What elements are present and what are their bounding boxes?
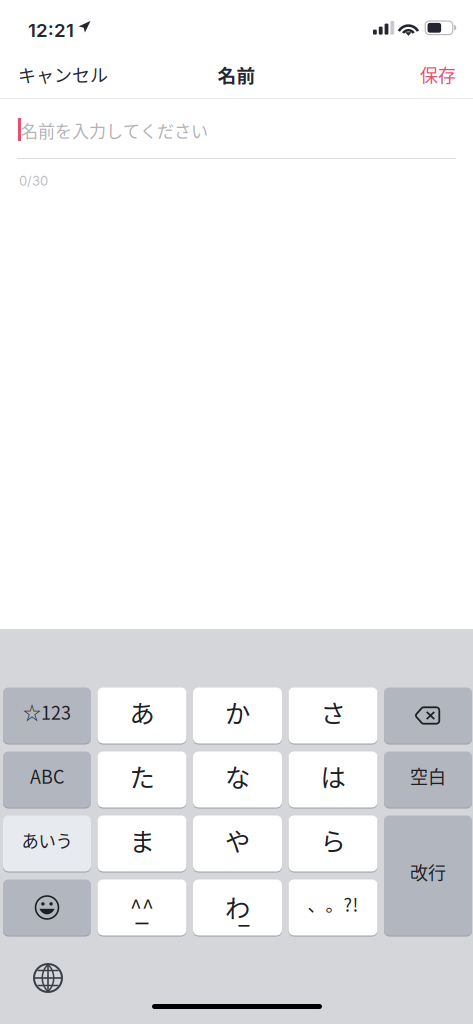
staticText: か — [225, 694, 250, 730]
button[interactable]: Emoji — [3, 879, 91, 936]
staticText: 、。?! — [307, 891, 358, 917]
button[interactable]: 、。?! — [288, 879, 377, 936]
staticText: さ — [320, 694, 345, 730]
button[interactable]: ABC — [3, 751, 91, 808]
button[interactable]: Kaomoji — [97, 879, 186, 936]
staticText: ま — [129, 822, 154, 858]
button[interactable]: た — [97, 751, 186, 808]
button[interactable]: ら — [288, 815, 377, 872]
staticText: キャンセル — [18, 61, 108, 88]
button[interactable]: Delete — [384, 687, 472, 744]
staticText: あ — [129, 694, 154, 730]
button[interactable]: 名前 — [0, 50, 473, 99]
button[interactable]: 改行 — [384, 815, 472, 936]
staticText: ^^ — [130, 891, 154, 922]
staticText: 名前を入力してください — [21, 118, 208, 143]
button[interactable]: あいう — [3, 815, 91, 872]
staticText: 0/30 — [19, 173, 48, 189]
staticText: 改行 — [410, 859, 446, 885]
staticText: わ — [225, 888, 250, 925]
button[interactable]: な — [193, 751, 282, 808]
staticText: た — [129, 758, 154, 794]
staticText: ABC — [30, 763, 64, 789]
staticText: は — [320, 758, 345, 794]
button[interactable]: ☆123 — [3, 687, 91, 744]
button[interactable]: わ — [193, 879, 282, 936]
staticText: な — [225, 758, 250, 794]
button[interactable]: 空白 — [384, 751, 472, 808]
staticText: 空白 — [410, 763, 446, 789]
staticText: あいう — [21, 827, 72, 853]
button[interactable]: キャンセル — [0, 50, 138, 99]
button[interactable]: や — [193, 815, 282, 872]
staticText: ら — [320, 822, 345, 858]
button[interactable]: Switch keyboard — [25, 955, 71, 1001]
staticText: 保存 — [420, 61, 456, 88]
button[interactable]: か — [193, 687, 282, 744]
staticText: 12:21 — [28, 19, 74, 42]
button[interactable]: さ — [288, 687, 377, 744]
staticText: ☆123 — [23, 699, 71, 725]
button[interactable]: あ — [97, 687, 186, 744]
staticText: や — [225, 822, 250, 858]
staticText: 名前 — [217, 61, 255, 88]
button[interactable]: は — [288, 751, 377, 808]
button[interactable]: 保存 — [366, 50, 473, 99]
button[interactable]: ま — [97, 815, 186, 872]
